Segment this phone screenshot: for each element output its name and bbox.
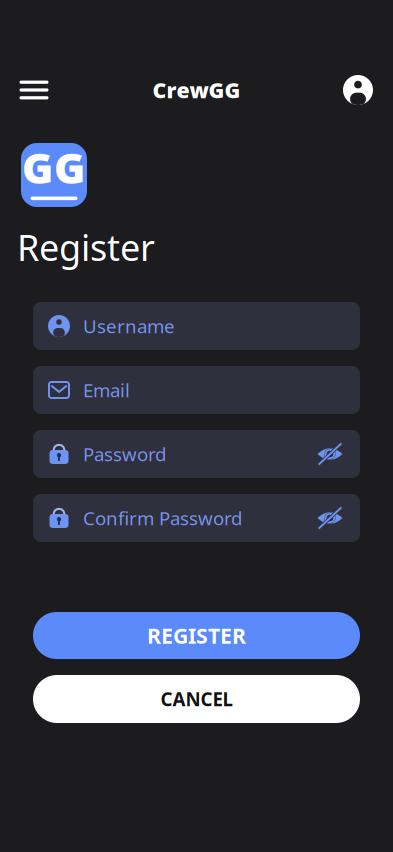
button[interactable]: CANCEL (33, 675, 360, 723)
button[interactable]: REGISTER (33, 612, 360, 659)
staticText: GG (22, 139, 86, 196)
button[interactable]: Confirm Password (33, 494, 360, 542)
staticText: REGISTER (147, 621, 246, 650)
button[interactable]: Account (336, 68, 380, 112)
staticText: CANCEL (160, 687, 232, 711)
button[interactable]: Email (33, 366, 360, 414)
button[interactable]: Password (33, 430, 360, 478)
button[interactable]: Username (33, 302, 360, 350)
staticText: CrewGG (152, 76, 240, 104)
staticText: Username (83, 314, 175, 338)
staticText: Email (83, 378, 130, 402)
staticText: Register (17, 223, 155, 271)
staticText: Confirm Password (83, 506, 242, 530)
button[interactable]: Menu (12, 68, 56, 112)
staticText: Password (83, 442, 166, 466)
